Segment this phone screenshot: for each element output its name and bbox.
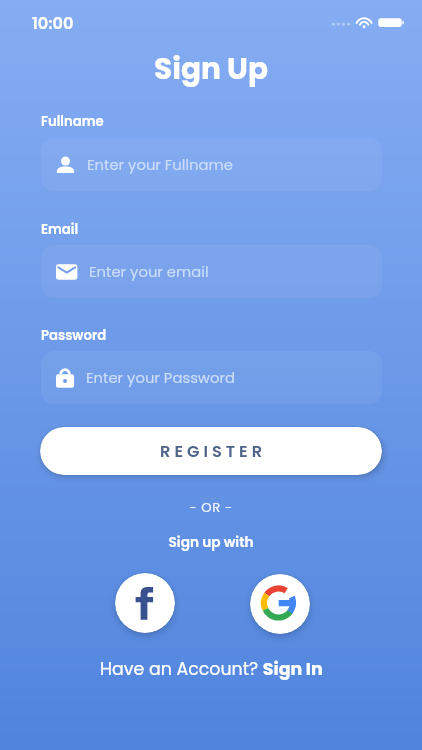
button[interactable]: REGISTER xyxy=(40,427,382,475)
staticText: REGISTER xyxy=(160,440,267,463)
button[interactable]: Have an Account? Sign In xyxy=(96,655,327,683)
button[interactable]: Enter your email xyxy=(41,245,382,298)
staticText: Email xyxy=(41,220,79,238)
staticText: Enter your email xyxy=(89,261,209,282)
button[interactable]: Sign up with Google xyxy=(250,574,310,634)
staticText: - OR - xyxy=(0,498,422,516)
staticText: 10:00 xyxy=(32,12,74,35)
staticText: Password xyxy=(41,326,107,344)
staticText: Sign Up xyxy=(0,48,422,89)
button[interactable]: Enter your Password xyxy=(41,351,382,404)
staticText: Enter your Password xyxy=(86,367,235,388)
staticText: Sign up with xyxy=(0,533,422,552)
staticText: Enter your Fullname xyxy=(87,154,233,175)
button[interactable]: Sign up with Facebook xyxy=(115,573,175,633)
staticText: Fullname xyxy=(41,112,104,130)
button[interactable]: Enter your Fullname xyxy=(41,138,382,191)
